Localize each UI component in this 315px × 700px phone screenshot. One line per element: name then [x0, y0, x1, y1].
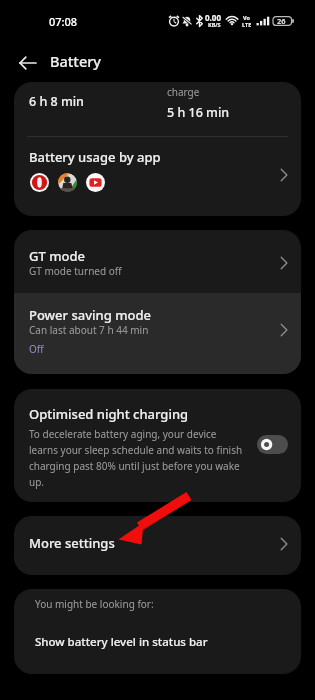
staticText: charge — [167, 85, 200, 99]
button[interactable]: Battery usage by app — [14, 137, 301, 216]
staticText: GT mode turned off — [29, 264, 122, 278]
staticText: Battery usage by app — [29, 148, 161, 166]
staticText: KB/S — [208, 21, 221, 28]
button[interactable]: GT mode — [14, 230, 301, 293]
button[interactable]: Back — [13, 48, 43, 78]
staticText: LTE — [242, 21, 252, 28]
staticText: To decelerate battery aging, your device… — [29, 427, 243, 489]
staticText: GT mode — [29, 247, 85, 265]
staticText: 6 h 8 min — [29, 93, 84, 110]
staticText: Can last about 7 h 44 min — [29, 323, 149, 337]
button[interactable]: Show battery level in status bar — [14, 627, 301, 674]
staticText: 0.00 — [205, 12, 221, 23]
staticText: Off — [29, 342, 44, 356]
staticText: You might be looking for: — [35, 597, 154, 611]
staticText: Battery — [50, 51, 101, 71]
staticText: 07:08 — [49, 14, 78, 29]
staticText: Power saving mode — [29, 306, 151, 324]
button[interactable]: Power saving mode — [14, 293, 301, 374]
staticText: Optimised night charging — [29, 405, 189, 423]
staticText: More settings — [29, 534, 115, 552]
staticText: Vo — [243, 14, 250, 21]
staticText: Show battery level in status bar — [35, 634, 208, 650]
staticText: 5 h 16 min — [167, 104, 230, 121]
button[interactable]: Optimised night charging toggle — [257, 435, 288, 454]
button[interactable]: More settings — [14, 516, 301, 575]
staticText: 26 — [277, 16, 286, 26]
